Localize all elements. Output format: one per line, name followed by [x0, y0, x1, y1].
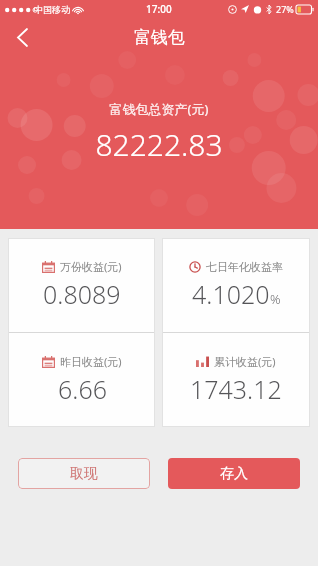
button[interactable]: 昨日收益(元) [8, 333, 155, 427]
button[interactable]: 返回 [0, 18, 44, 56]
staticText: 1743.12 [190, 372, 282, 406]
staticText: 0.8089 [43, 277, 121, 311]
button[interactable]: 累计收益(元) [162, 333, 310, 427]
staticText: 17:00 [146, 2, 172, 16]
staticText: 昨日收益(元) [60, 354, 122, 369]
staticText: 富钱包 [134, 27, 185, 48]
staticText: 82222.83 [0, 124, 318, 165]
staticText: 中国移动 [34, 4, 70, 15]
button[interactable]: 存入 [168, 458, 300, 489]
staticText: % [270, 290, 281, 308]
button[interactable]: 万份收益(元) [8, 238, 155, 332]
staticText: 万份收益(元) [60, 259, 122, 274]
staticText: 取现 [70, 465, 98, 483]
button[interactable]: 七日年化收益率 [162, 238, 310, 332]
staticText: 27% [276, 3, 294, 15]
staticText: 富钱包总资产(元) [0, 100, 318, 118]
staticText: 七日年化收益率 [206, 260, 283, 274]
staticText: 累计收益(元) [214, 354, 276, 369]
staticText: 存入 [220, 465, 248, 483]
staticText: 4.1020 [192, 277, 270, 311]
staticText: 6.66 [58, 372, 107, 406]
button[interactable]: 取现 [18, 458, 150, 489]
